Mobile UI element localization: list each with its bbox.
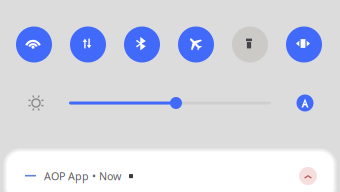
staticText: AOP App • Now xyxy=(44,169,121,183)
button[interactable]: Auto brightness xyxy=(296,94,313,111)
button[interactable]: Auto-rotate xyxy=(286,26,322,62)
button[interactable]: Airplane mode xyxy=(178,26,214,62)
button[interactable]: Wi-Fi xyxy=(16,26,52,62)
button[interactable]: Mobile data xyxy=(70,26,106,62)
button[interactable]: Bluetooth xyxy=(124,26,160,62)
button[interactable]: Flashlight xyxy=(232,26,268,62)
button[interactable]: AOP App notification xyxy=(7,152,333,192)
